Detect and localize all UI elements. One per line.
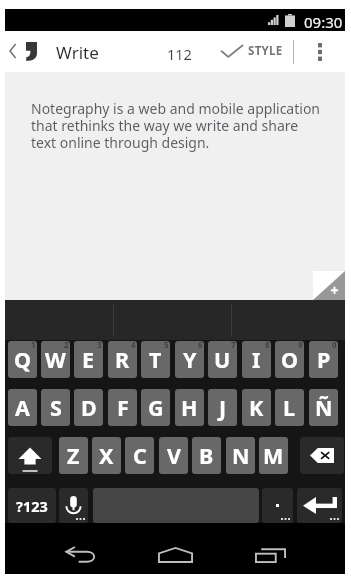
button[interactable]: Backspace xyxy=(300,437,344,474)
button[interactable]: Add note xyxy=(313,271,345,300)
button[interactable]: W xyxy=(41,341,70,378)
staticText: H xyxy=(181,393,198,422)
staticText: 0 xyxy=(332,341,337,350)
staticText: Q xyxy=(14,345,32,374)
staticText: I xyxy=(252,345,261,374)
button[interactable]: O xyxy=(275,341,304,378)
staticText: M xyxy=(263,441,284,470)
button[interactable]: C xyxy=(125,437,154,474)
button[interactable]: V xyxy=(159,437,188,474)
button[interactable]: Y xyxy=(175,341,204,378)
button[interactable]: B xyxy=(192,437,221,474)
button[interactable]: P xyxy=(309,341,338,378)
staticText: STYLE xyxy=(248,43,283,59)
button[interactable]: Symbols xyxy=(8,488,56,523)
staticText: O xyxy=(281,345,299,374)
button[interactable]: Back xyxy=(42,523,119,574)
staticText: L xyxy=(283,393,296,422)
staticText: 09:30 xyxy=(304,12,343,32)
button[interactable]: E xyxy=(74,341,103,378)
staticText: R xyxy=(115,345,130,374)
staticText: N xyxy=(232,441,250,470)
button[interactable]: Ñ xyxy=(309,389,338,426)
button[interactable]: T xyxy=(141,341,170,378)
button[interactable]: L xyxy=(275,389,304,426)
button[interactable]: D xyxy=(74,389,103,426)
staticText: 6 xyxy=(198,341,203,350)
staticText: E xyxy=(82,345,95,374)
staticText: 4 xyxy=(131,341,136,350)
button[interactable]: Period xyxy=(262,488,293,523)
staticText: 7 xyxy=(231,341,236,350)
staticText: A xyxy=(15,393,30,422)
button[interactable]: Recent apps xyxy=(232,523,309,574)
button[interactable]: More options xyxy=(301,31,339,71)
button[interactable]: S xyxy=(41,389,70,426)
staticText: Z xyxy=(67,441,80,470)
staticText: ?123 xyxy=(16,496,48,516)
staticText: Notegraphy is a web and mobile applicati… xyxy=(31,99,323,152)
button[interactable]: Z xyxy=(59,437,88,474)
staticText: C xyxy=(133,441,147,470)
button[interactable]: J xyxy=(208,389,237,426)
button[interactable]: Q xyxy=(8,341,37,378)
staticText: 112 xyxy=(167,44,192,64)
button[interactable]: G xyxy=(141,389,170,426)
button[interactable]: Back xyxy=(6,31,46,71)
staticText: 5 xyxy=(164,341,169,350)
staticText: 8 xyxy=(265,341,270,350)
staticText: Y xyxy=(183,345,197,374)
button[interactable]: H xyxy=(175,389,204,426)
button[interactable]: M xyxy=(259,437,288,474)
button[interactable]: X xyxy=(92,437,121,474)
staticText: Write xyxy=(56,41,99,64)
staticText: F xyxy=(117,393,129,422)
button[interactable]: I xyxy=(242,341,271,378)
button[interactable]: F xyxy=(108,389,137,426)
button[interactable]: STYLE xyxy=(218,31,286,71)
button[interactable]: K xyxy=(242,389,271,426)
button[interactable]: N xyxy=(226,437,255,474)
staticText: 1 xyxy=(31,341,36,350)
button[interactable]: A xyxy=(8,389,37,426)
staticText: T xyxy=(149,345,162,374)
staticText: P xyxy=(317,345,331,374)
staticText: D xyxy=(81,393,97,422)
button[interactable]: U xyxy=(208,341,237,378)
button[interactable]: Voice input xyxy=(59,488,88,523)
staticText: X xyxy=(99,441,114,470)
button[interactable]: Enter xyxy=(297,488,342,523)
button[interactable]: Home xyxy=(137,523,214,574)
staticText: 9 xyxy=(298,341,303,350)
staticText: G xyxy=(148,393,164,422)
staticText: V xyxy=(167,441,181,470)
staticText: U xyxy=(214,345,231,374)
button[interactable]: R xyxy=(108,341,137,378)
button[interactable]: Shift xyxy=(8,437,52,474)
staticText: B xyxy=(199,441,214,470)
staticText: 3 xyxy=(97,341,102,350)
staticText: W xyxy=(45,345,66,374)
staticText: Ñ xyxy=(315,393,333,422)
staticText: K xyxy=(249,393,264,422)
staticText: J xyxy=(219,393,227,422)
staticText: 2 xyxy=(64,341,69,350)
staticText: S xyxy=(50,393,62,422)
